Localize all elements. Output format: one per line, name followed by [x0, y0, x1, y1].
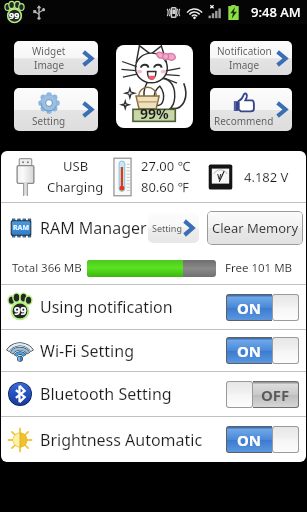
staticText: Free 101 MB [225, 260, 293, 276]
button[interactable]: Notification [210, 41, 292, 75]
staticText: ON [237, 298, 262, 318]
button[interactable]: ON [226, 337, 299, 364]
staticText: ON [237, 341, 262, 361]
staticText: RAM [13, 223, 30, 233]
button[interactable]: OFF [226, 381, 299, 408]
staticText: Image [229, 58, 260, 72]
staticText: Using notification [40, 296, 173, 318]
button[interactable]: Setting [148, 213, 199, 243]
button[interactable]: Setting [14, 88, 98, 131]
staticText: 4.182 V [244, 168, 289, 186]
staticText: OFF [261, 385, 290, 405]
button[interactable]: Wi-Fi Setting [1, 330, 306, 371]
button[interactable]: Battery mascot 99 percent [116, 45, 193, 128]
staticText: RAM Manager [40, 217, 147, 239]
staticText: 9:48 AM [251, 3, 301, 21]
button[interactable]: ON [226, 294, 299, 321]
button[interactable]: Clear Memory [208, 212, 302, 244]
staticText: USB [63, 157, 89, 175]
staticText: Brightness Automatic [40, 429, 203, 451]
staticText: Clear Memory [212, 219, 299, 237]
button[interactable]: ON [226, 426, 299, 453]
staticText: Image [34, 58, 65, 72]
staticText: 80.60 ℉ [141, 178, 189, 196]
button[interactable]: Brightness Automatic [1, 417, 306, 462]
staticText: Setting [152, 222, 182, 234]
staticText: Widget [32, 44, 66, 58]
button[interactable]: Widget [14, 41, 98, 75]
staticText: Setting [32, 114, 66, 128]
staticText: Recommend [214, 114, 274, 128]
staticText: ON [237, 430, 262, 450]
staticText: Notification [217, 44, 272, 58]
staticText: Bluetooth Setting [40, 383, 172, 405]
button[interactable]: Bluetooth Setting [1, 372, 306, 416]
button[interactable]: Recommend [210, 88, 292, 131]
staticText: Wi-Fi Setting [40, 340, 134, 362]
button[interactable]: 99 [1, 285, 306, 329]
staticText: 99% [140, 104, 169, 123]
staticText: 27.00 ℃ [141, 157, 191, 175]
staticText: 99 [9, 9, 20, 21]
staticText: Total 366 MB [12, 260, 82, 276]
staticText: Charging [47, 178, 104, 196]
staticText: 99 [14, 303, 27, 318]
